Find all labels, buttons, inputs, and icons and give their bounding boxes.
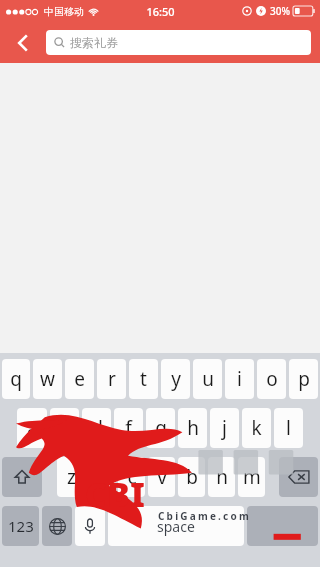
- button[interactable]: i: [225, 359, 254, 399]
- staticText: w: [40, 366, 55, 392]
- staticText: 搜索礼券: [70, 35, 118, 50]
- button[interactable]: Change keyboard: [42, 506, 72, 546]
- button[interactable]: v: [148, 457, 175, 497]
- button[interactable]: Backspace: [279, 457, 318, 497]
- staticText: CbiGame.com: [158, 509, 251, 523]
- staticText: e: [74, 366, 85, 392]
- button[interactable]: h: [178, 408, 207, 448]
- staticText: 123: [8, 516, 34, 536]
- staticText: 30%: [270, 4, 290, 18]
- button[interactable]: Voice input: [75, 506, 105, 546]
- staticText: s: [60, 415, 70, 441]
- button[interactable]: z: [57, 457, 85, 497]
- button[interactable]: o: [257, 359, 286, 399]
- button[interactable]: m: [238, 457, 265, 497]
- staticText: n: [216, 464, 228, 490]
- button[interactable]: Space: [108, 506, 244, 546]
- button[interactable]: j: [210, 408, 239, 448]
- staticText: a: [27, 415, 38, 441]
- button[interactable]: a: [17, 408, 47, 448]
- button[interactable]: w: [33, 359, 62, 399]
- staticText: t: [140, 366, 147, 392]
- staticText: b: [186, 464, 198, 490]
- staticText: d: [91, 415, 103, 441]
- button[interactable]: b: [178, 457, 205, 497]
- button[interactable]: l: [274, 408, 303, 448]
- staticText: z: [67, 464, 76, 490]
- button[interactable]: t: [129, 359, 158, 399]
- staticText: q: [10, 366, 22, 392]
- staticText: k: [251, 415, 262, 441]
- staticText: 16:50: [146, 4, 175, 19]
- button[interactable]: 搜索礼券: [46, 30, 311, 55]
- button[interactable]: e: [65, 359, 94, 399]
- staticText: g: [155, 415, 167, 441]
- staticText: c: [127, 464, 137, 490]
- button[interactable]: Back: [0, 22, 46, 63]
- button[interactable]: f: [114, 408, 143, 448]
- staticText: h: [187, 415, 199, 441]
- staticText: CBI: [85, 471, 145, 517]
- staticText: f: [125, 415, 132, 441]
- button[interactable]: n: [208, 457, 235, 497]
- staticText: space: [157, 517, 195, 536]
- button[interactable]: Shift: [2, 457, 42, 497]
- button[interactable]: r: [97, 359, 126, 399]
- button[interactable]: Search: [247, 506, 318, 546]
- button[interactable]: 123: [2, 506, 39, 546]
- button[interactable]: k: [242, 408, 271, 448]
- staticText: v: [157, 464, 167, 490]
- button[interactable]: g: [146, 408, 175, 448]
- staticText: 中国移动: [44, 5, 84, 18]
- staticText: i: [237, 366, 242, 392]
- button[interactable]: y: [161, 359, 190, 399]
- staticText: p: [298, 366, 310, 392]
- staticText: r: [108, 366, 116, 392]
- staticText: o: [266, 366, 278, 392]
- button[interactable]: p: [289, 359, 318, 399]
- staticText: l: [286, 415, 291, 441]
- button[interactable]: u: [193, 359, 222, 399]
- staticText: y: [171, 366, 181, 392]
- button[interactable]: c: [118, 457, 145, 497]
- staticText: m: [243, 464, 261, 490]
- button[interactable]: d: [82, 408, 111, 448]
- button[interactable]: q: [2, 359, 30, 399]
- button[interactable]: x: [88, 457, 115, 497]
- staticText: u: [202, 366, 214, 392]
- button[interactable]: s: [50, 408, 79, 448]
- staticText: j: [222, 415, 227, 441]
